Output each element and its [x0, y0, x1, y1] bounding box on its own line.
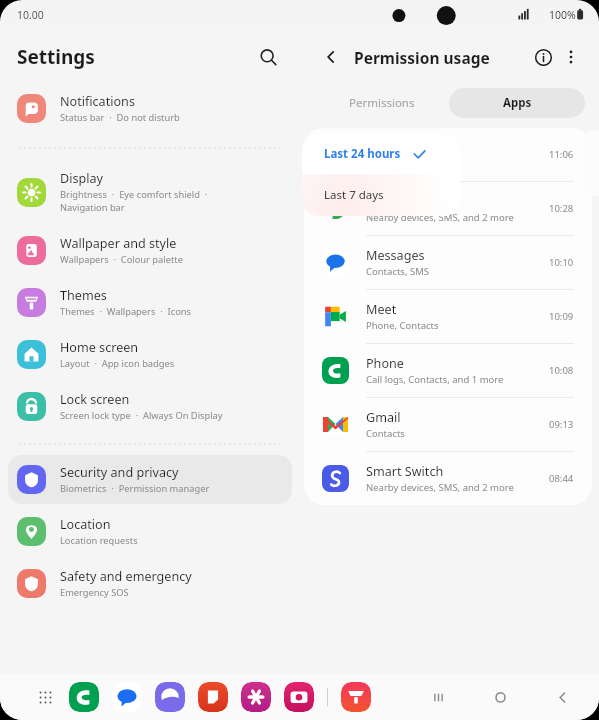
button[interactable]: Wallpaper and style — [8, 226, 292, 275]
staticText: Layout · App icon badges — [60, 357, 175, 370]
staticText: Brightness · Eye comfort shield · — [60, 188, 208, 201]
button[interactable]: Home screen — [8, 330, 292, 379]
staticText: Wallpaper and style — [60, 235, 177, 252]
staticText: Apps — [503, 95, 532, 111]
button[interactable]: Gmail — [304, 398, 592, 451]
staticText: 09:13 — [549, 418, 574, 431]
button[interactable]: Apps — [34, 686, 56, 708]
staticText: Last 24 hours — [324, 146, 401, 162]
staticText: 10:28 — [549, 202, 574, 215]
staticText: Safety and emergency — [60, 568, 192, 585]
button[interactable]: Google — [304, 182, 592, 235]
staticText: Permissions — [349, 95, 415, 111]
staticText: Contacts, SMS — [366, 265, 429, 278]
staticText: Permission usage — [354, 47, 529, 68]
staticText: Lock screen — [60, 391, 130, 408]
button[interactable]: More options — [557, 43, 585, 71]
staticText: Nearby devices, SMS, and 2 more — [366, 211, 514, 224]
button[interactable]: Internet — [155, 682, 185, 712]
button[interactable]: Notifications — [8, 84, 292, 133]
button[interactable]: Gallery — [198, 682, 228, 712]
button[interactable]: Galaxy Store — [341, 682, 371, 712]
button[interactable]: Health — [241, 682, 271, 712]
staticText: Messages — [366, 247, 425, 264]
staticText: Emergency SOS — [60, 586, 129, 599]
staticText: Smart Switch — [366, 463, 444, 480]
button[interactable]: Apps — [449, 88, 585, 118]
staticText: 10:08 — [549, 364, 574, 377]
button[interactable]: Meet — [304, 290, 592, 343]
button[interactable]: Smart Switch — [304, 452, 592, 505]
staticText: Call logs, Contacts, and 1 more — [366, 373, 504, 386]
button[interactable]: Display — [8, 161, 292, 223]
staticText: 08:44 — [549, 472, 574, 485]
staticText: Notifications — [60, 93, 135, 110]
button[interactable]: Information — [529, 43, 557, 71]
staticText: Location — [60, 516, 111, 533]
staticText: Wallpapers · Colour palette — [60, 253, 183, 266]
staticText: Screen lock type · Always On Display — [60, 409, 223, 422]
staticText: Meet — [366, 301, 397, 318]
button[interactable]: Security and privacy — [8, 455, 292, 504]
staticText: Settings — [17, 44, 253, 70]
staticText: Google — [366, 193, 409, 210]
button[interactable]: Lock screen — [8, 382, 292, 431]
staticText: Last 7 days — [324, 187, 384, 203]
button[interactable]: Back — [549, 684, 575, 710]
staticText: Contacts — [366, 427, 405, 440]
staticText: Phone — [366, 355, 404, 372]
button[interactable]: Last 24 hours — [302, 134, 460, 174]
button[interactable]: Camera — [284, 682, 314, 712]
staticText: Themes — [60, 287, 107, 304]
staticText: Navigation bar — [60, 201, 125, 214]
button[interactable]: Recent apps — [425, 684, 451, 710]
button[interactable]: Phone — [304, 344, 592, 397]
button[interactable]: Back — [318, 44, 344, 70]
staticText: Location requests — [60, 534, 138, 547]
staticText: 10:10 — [549, 256, 574, 269]
button[interactable]: Messages — [112, 682, 142, 712]
button[interactable]: Location — [8, 507, 292, 556]
staticText: Display — [60, 170, 103, 187]
staticText: 10.00 — [17, 8, 44, 22]
button[interactable]: Themes — [8, 278, 292, 327]
button[interactable]: Phone — [69, 682, 99, 712]
button[interactable]: Safety and emergency — [8, 559, 292, 608]
staticText: Themes · Wallpapers · Icons — [60, 305, 191, 318]
button[interactable]: Home — [487, 684, 513, 710]
staticText: Status bar · Do not disturb — [60, 111, 180, 124]
staticText: Biometrics · Permission manager — [60, 482, 210, 495]
button[interactable]: 11:06 — [304, 128, 592, 181]
staticText: 11:06 — [549, 148, 574, 161]
staticText: Nearby devices, SMS, and 2 more — [366, 481, 514, 494]
staticText: 100% — [549, 8, 576, 22]
button[interactable]: Last 7 days — [302, 174, 460, 216]
staticText: Home screen — [60, 339, 139, 356]
button[interactable]: Search — [253, 42, 283, 72]
staticText: Security and privacy — [60, 464, 179, 481]
staticText: Gmail — [366, 409, 401, 426]
button[interactable]: Messages — [304, 236, 592, 289]
staticText: 10:09 — [549, 310, 574, 323]
button[interactable]: Permissions — [314, 88, 449, 118]
staticText: Phone, Contacts — [366, 319, 439, 332]
